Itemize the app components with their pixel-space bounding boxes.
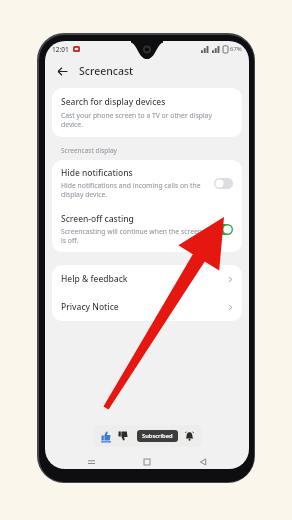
button[interactable]: Switch on: [214, 224, 233, 235]
staticText: 67%: [230, 45, 242, 53]
button[interactable]: Privacy Notice: [52, 293, 242, 321]
staticText: Privacy Notice: [61, 301, 228, 313]
button[interactable]: Switch off: [214, 178, 233, 189]
staticText: Screencast display: [61, 146, 117, 155]
staticText: Screen-off casting: [61, 213, 134, 225]
button[interactable]: Hide notifications: [52, 160, 242, 206]
staticText: Search for display devices: [61, 96, 166, 108]
button[interactable]: Help & feedback: [52, 265, 242, 293]
staticText: 12:01: [52, 45, 69, 54]
button[interactable]: Back: [52, 61, 72, 81]
staticText: Screencasting will continue when the scr…: [61, 227, 208, 245]
button[interactable]: Notifications: [185, 431, 194, 441]
button[interactable]: Recents: [81, 455, 101, 469]
button[interactable]: Subscribed: [137, 430, 178, 442]
button[interactable]: Back: [193, 455, 213, 469]
button[interactable]: Screen-off casting: [52, 206, 242, 252]
button[interactable]: Dislike: [118, 431, 128, 441]
button[interactable]: Search for display devices: [52, 88, 242, 137]
button[interactable]: Like: [101, 431, 111, 441]
staticText: Hide notifications: [61, 167, 133, 179]
staticText: Hide notifications and incoming calls on…: [61, 181, 208, 199]
staticText: Screencast: [79, 64, 134, 78]
staticText: Subscribed: [142, 432, 173, 440]
staticText: Cast your phone screen to a TV or other …: [61, 111, 233, 129]
button[interactable]: Home: [137, 455, 157, 469]
staticText: Help & feedback: [61, 273, 228, 285]
